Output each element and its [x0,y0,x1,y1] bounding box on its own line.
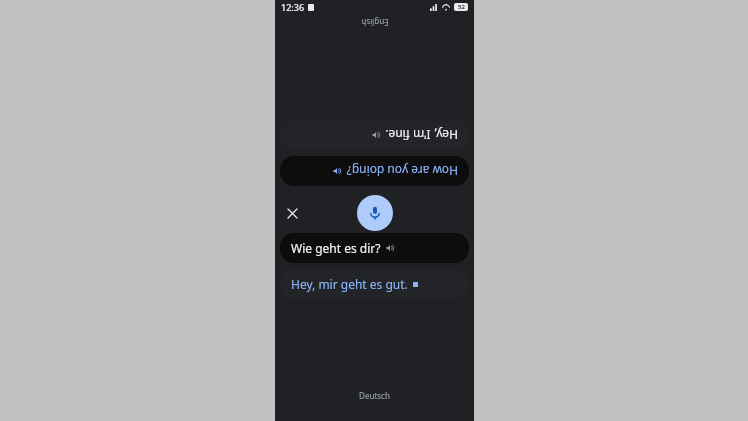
button[interactable]: Wie geht es dir? [280,233,469,263]
staticText: Hey, mir geht es gut. [291,276,408,292]
button[interactable]: Close conversation [278,199,306,227]
staticText: 12:36 [281,1,305,13]
staticText: English [361,17,389,28]
staticText: Wie geht es dir? [291,240,381,256]
button[interactable]: How are you doing? [280,156,469,186]
button[interactable]: Microphone [357,195,393,231]
button[interactable]: Hey, I'm fine. [280,120,469,150]
staticText: How are you doing? [346,163,458,179]
button[interactable]: Hey, mir geht es gut. [280,269,469,299]
staticText: Deutsch [359,390,390,401]
staticText: Hey, I'm fine. [385,127,458,143]
staticText: 52 [458,3,465,11]
